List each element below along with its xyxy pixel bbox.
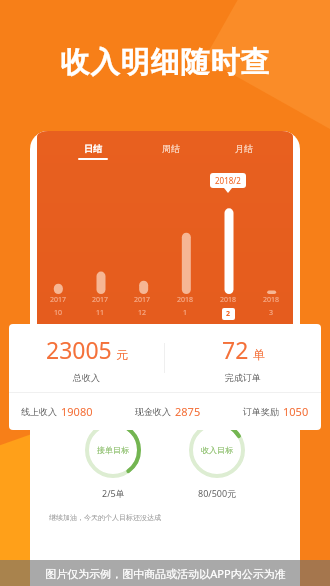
staticText: 2017 [50,295,67,305]
staticText: 11 [96,308,105,318]
button[interactable]: 周结 [148,141,194,162]
button[interactable]: 日结 [64,141,122,162]
button[interactable]: 72 [165,334,321,383]
staticText: 1050 [283,404,309,419]
staticText: 2018 [220,295,237,305]
staticText: 现金收入 [135,406,171,417]
staticText: 接单目标 [97,445,129,455]
staticText: 10 [54,308,63,318]
staticText: 订单奖励 [243,406,279,417]
staticText: 图片仅为示例，图中商品或活动以APP内公示为准 [45,566,286,581]
staticText: 日结 [84,143,102,154]
staticText: 收入明细随时查 [60,44,270,81]
staticText: 线上收入 [21,406,57,417]
staticText: 19080 [61,404,93,419]
staticText: 元 [116,347,128,362]
staticText: 2017 [92,295,109,305]
button[interactable]: 23005 [9,334,164,383]
staticText: 2018 [263,295,280,305]
staticText: 2 [226,309,231,319]
staticText: 80/500元 [198,487,237,499]
staticText: 23005 [46,334,112,365]
staticText: 继续加油，今天的个人目标还没达成 [49,513,161,522]
staticText: 单 [253,347,265,362]
staticText: 2018/2 [215,175,241,186]
button[interactable]: 接单目标 [85,422,141,499]
staticText: 1 [183,308,188,318]
staticText: 总收入 [73,372,100,383]
staticText: 月结 [235,143,253,154]
staticText: 周结 [162,143,180,154]
button[interactable]: 月结 [221,141,267,162]
staticText: 2875 [175,404,201,419]
button[interactable]: 现金收入 [135,404,201,419]
button[interactable]: 线上收入 [21,404,93,419]
staticText: 3 [269,308,274,318]
button[interactable]: 订单奖励 [243,404,309,419]
button[interactable]: 收入目标 [189,422,245,499]
staticText: 12 [138,308,147,318]
staticText: 2017 [134,295,151,305]
staticText: 2018 [177,295,194,305]
staticText: 收入目标 [201,445,233,455]
staticText: 完成订单 [225,372,261,383]
staticText: 2/5单 [102,487,125,499]
staticText: 72 [222,334,249,365]
